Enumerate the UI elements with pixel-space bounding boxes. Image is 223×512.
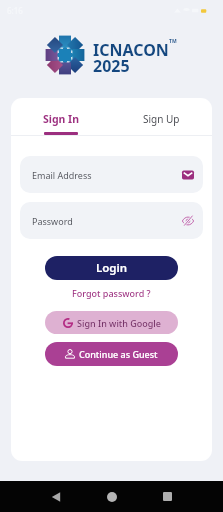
button[interactable]: Email Address: [20, 156, 203, 193]
button[interactable]: Sign Up: [111, 98, 212, 135]
button[interactable]: Continue as Guest: [45, 342, 178, 366]
staticText: Continue as Guest: [79, 348, 158, 360]
button[interactable]: Forgot password ?: [72, 287, 151, 299]
button[interactable]: Sign In: [11, 98, 111, 135]
staticText: Password: [32, 215, 73, 227]
staticText: Sign Up: [143, 112, 180, 126]
button[interactable]: Recent apps: [152, 481, 182, 512]
staticText: Login: [96, 260, 128, 276]
button[interactable]: Password: [20, 202, 203, 239]
staticText: Sign In with Google: [77, 317, 161, 329]
staticText: 2025: [93, 55, 130, 77]
staticText: Email Address: [32, 169, 92, 181]
staticText: Sign In: [43, 112, 80, 126]
staticText: TM: [169, 38, 177, 45]
button[interactable]: Back: [41, 481, 71, 512]
button[interactable]: Login: [45, 256, 178, 280]
staticText: ICNACON: [93, 39, 169, 61]
button[interactable]: Sign In with Google: [45, 311, 178, 334]
button[interactable]: Home: [96, 481, 127, 512]
